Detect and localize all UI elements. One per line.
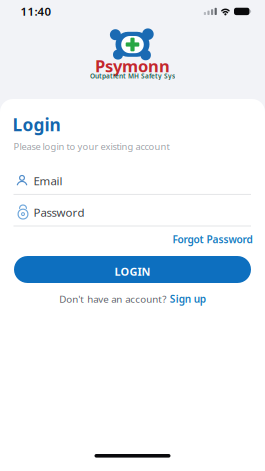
staticText: Forgot Password	[172, 232, 252, 246]
staticText: Please login to your existing account	[13, 140, 169, 153]
staticText: Email	[33, 173, 62, 189]
staticText: Password	[33, 204, 84, 220]
button[interactable]: Forgot Password	[172, 232, 252, 246]
staticText: LOGIN	[114, 264, 150, 279]
staticText: Sign up	[170, 292, 206, 306]
staticText: Don't have an account?	[59, 292, 166, 306]
staticText: Psymonn	[95, 54, 170, 77]
staticText: 11:40	[20, 4, 51, 19]
button[interactable]: Sign up	[170, 292, 206, 306]
staticText: Login	[12, 113, 60, 136]
button[interactable]: LOGIN	[14, 256, 251, 283]
button[interactable]: Password	[13, 204, 251, 226]
staticText: Outpatient MH Safety Sys	[90, 71, 175, 80]
button[interactable]: Email	[13, 173, 251, 195]
